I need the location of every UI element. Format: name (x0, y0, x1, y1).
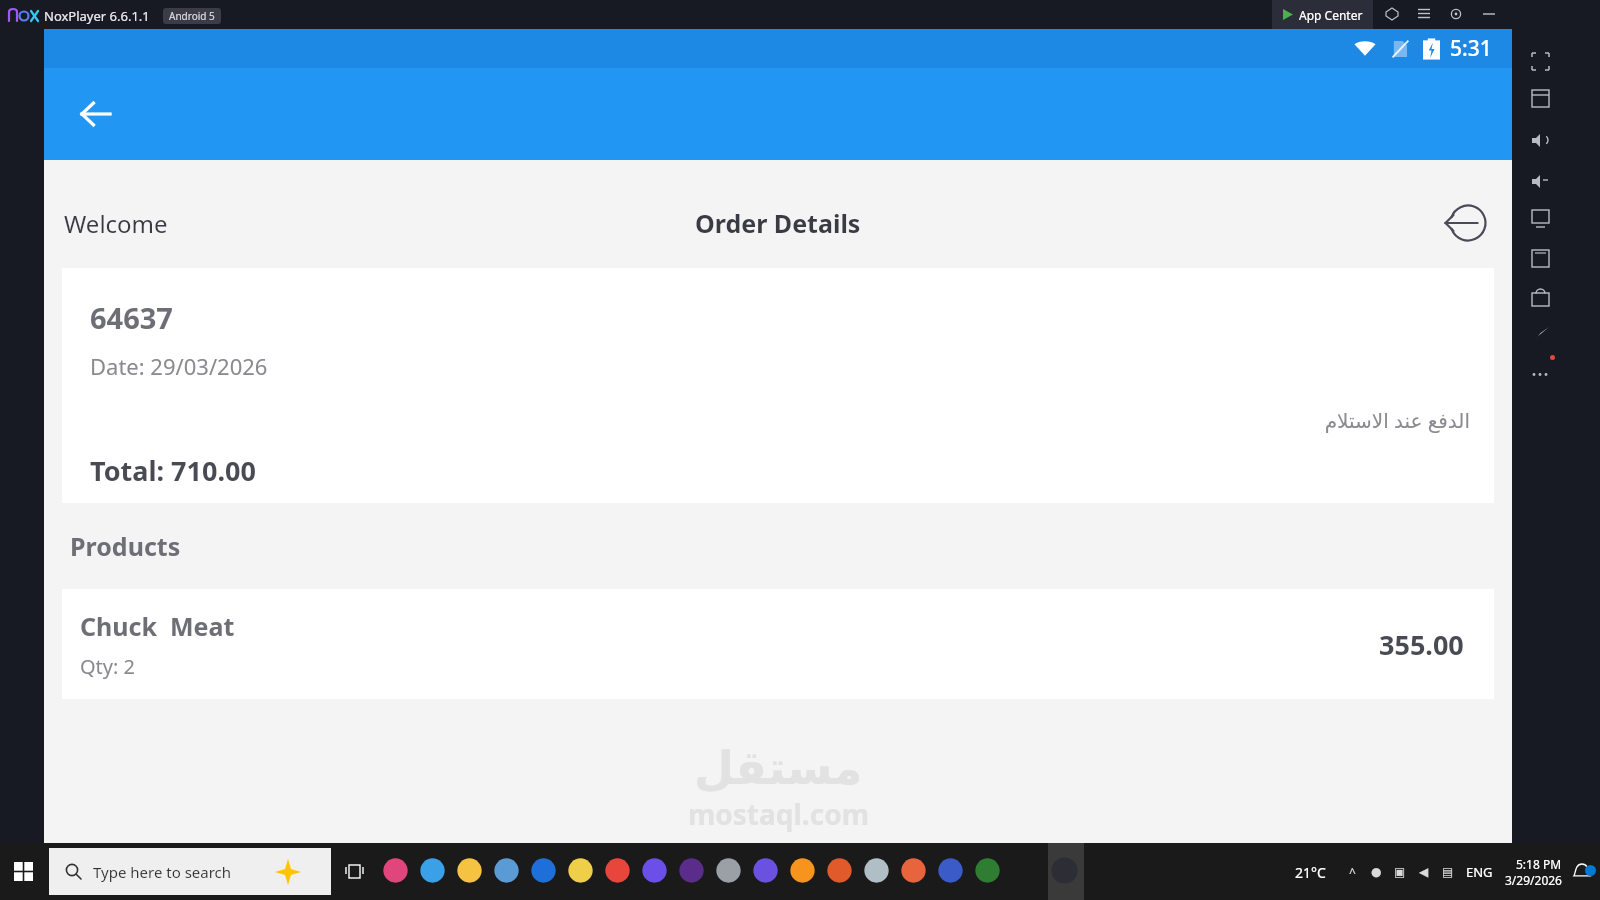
button[interactable]: sidebar tool 8 (1529, 363, 1551, 385)
button[interactable]: Taskbar app 11 (751, 856, 780, 885)
staticText: ◀ (1419, 865, 1429, 879)
staticText: Qty: 2 (80, 653, 136, 680)
staticText: Date: 29/03/2026 (90, 351, 268, 381)
button[interactable]: Taskbar app 1 (381, 856, 410, 885)
button[interactable]: Type here to search (49, 848, 331, 895)
staticText: 5:31 (1450, 34, 1492, 63)
button[interactable]: Tray ▤ (1436, 860, 1460, 884)
button[interactable]: Welcome (64, 207, 168, 240)
button[interactable]: NoxPlayer (1050, 856, 1079, 885)
staticText: App Center (1299, 7, 1363, 23)
button[interactable]: Back (68, 86, 124, 142)
staticText: ^ (1349, 864, 1356, 880)
button[interactable]: App Center (1282, 0, 1363, 29)
staticText: Chuck Meat (80, 609, 235, 643)
button[interactable]: Taskbar app 6 (566, 856, 595, 885)
button[interactable]: Taskbar app 17 (973, 856, 1002, 885)
button[interactable]: window control 3 (1478, 3, 1500, 25)
button[interactable]: Taskbar app 3 (455, 856, 484, 885)
button[interactable]: sidebar tool 5 (1529, 247, 1551, 269)
button[interactable]: Tray ● (1364, 860, 1388, 884)
staticText: Order Details (695, 206, 861, 240)
button[interactable]: Taskbar app 15 (899, 856, 928, 885)
staticText: Android 5 (169, 9, 215, 23)
staticText: NoxPlayer 6.6.1.1 (44, 7, 150, 25)
button[interactable]: Taskbar app 7 (603, 856, 632, 885)
button[interactable]: sidebar tool 0 (1529, 50, 1551, 72)
staticText: ● (1371, 865, 1382, 879)
button[interactable]: Tray ◀ (1412, 860, 1436, 884)
staticText: Products (70, 529, 181, 563)
staticText: Total: 710.00 (90, 452, 256, 489)
button[interactable]: Task view (335, 843, 373, 900)
staticText: 21°C (1295, 863, 1326, 882)
button[interactable]: Taskbar app 12 (788, 856, 817, 885)
button[interactable]: sidebar tool 7 (1529, 324, 1551, 346)
button[interactable]: Taskbar app 10 (714, 856, 743, 885)
staticText: 64637 (90, 298, 173, 337)
button[interactable]: sidebar tool 4 (1529, 207, 1551, 229)
button[interactable]: window control 2 (1445, 3, 1467, 25)
button[interactable]: Taskbar app 13 (825, 856, 854, 885)
staticText: الدفع عند الاستلام (90, 407, 1470, 434)
staticText: Type here to search (93, 862, 232, 882)
staticText: 3/29/2026 (1505, 872, 1562, 888)
button[interactable]: Tray ▣ (1388, 860, 1412, 884)
button[interactable]: Taskbar app 2 (418, 856, 447, 885)
button[interactable]: window control 0 (1381, 3, 1403, 25)
button[interactable]: Taskbar app 16 (936, 856, 965, 885)
staticText: ▤ (1442, 865, 1454, 879)
button[interactable]: Taskbar app 14 (862, 856, 891, 885)
button[interactable]: Start (0, 843, 47, 900)
staticText: 5:18 PM (1516, 856, 1562, 872)
button[interactable]: Taskbar app 4 (492, 856, 521, 885)
staticText: 355.00 (1379, 626, 1464, 663)
button[interactable]: 64637 (62, 268, 1494, 503)
button[interactable]: window control 1 (1413, 3, 1435, 25)
button[interactable]: Logout (1442, 199, 1490, 247)
button[interactable]: sidebar tool 1 (1529, 87, 1551, 109)
button[interactable]: sidebar tool 2 (1529, 129, 1551, 151)
button[interactable]: Taskbar app 5 (529, 856, 558, 885)
button[interactable]: Taskbar app 9 (677, 856, 706, 885)
button[interactable]: Taskbar app 8 (640, 856, 669, 885)
staticText: مستقل (694, 741, 863, 795)
button[interactable]: sidebar tool 3 (1529, 170, 1551, 192)
staticText: ▣ (1394, 865, 1406, 879)
staticText: mostaql.com (688, 795, 869, 833)
button[interactable]: Chuck Meat (62, 589, 1494, 699)
button[interactable]: Notifications (1572, 862, 1592, 882)
button[interactable]: Tray ^ (1340, 860, 1364, 884)
button[interactable]: sidebar tool 6 (1529, 286, 1551, 308)
staticText: ENG (1466, 863, 1493, 881)
